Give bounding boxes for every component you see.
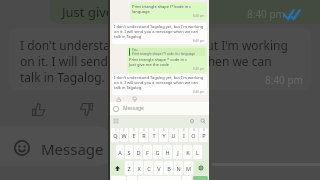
button[interactable]: M	[184, 161, 193, 175]
button[interactable]: F	[143, 145, 152, 159]
button[interactable]: K	[183, 145, 192, 159]
staticText: Print triangle shape (*)code in c langua…	[132, 4, 192, 14]
staticText: 8:40 pm	[193, 67, 205, 71]
staticText: T	[152, 132, 156, 139]
staticText: E	[132, 132, 136, 139]
staticText: Z	[127, 165, 131, 172]
staticText: 6	[163, 128, 165, 132]
staticText: I don't understand Tagalog yet, but I'm …	[114, 24, 204, 39]
button[interactable]: I don't understand Tagalog yet, but I'm …	[114, 24, 205, 43]
button[interactable]: Dislike	[79, 102, 93, 116]
staticText: 5	[153, 128, 155, 132]
staticText: Message	[123, 105, 144, 112]
staticText: You	[132, 48, 138, 52]
button[interactable]: D	[134, 145, 142, 159]
staticText: Message	[41, 139, 104, 159]
button[interactable]: A	[116, 145, 124, 159]
staticText: M	[186, 165, 191, 172]
button[interactable]: Dislike	[131, 96, 138, 102]
button[interactable]: You	[129, 48, 205, 71]
button[interactable]: 8	[179, 128, 188, 142]
staticText: I	[183, 132, 185, 139]
staticText: I don't understand Tagalog yet, but I'm …	[114, 75, 204, 90]
button[interactable]: Like	[31, 102, 45, 116]
staticText: Print triangle shape * code in c Just gi…	[129, 57, 187, 67]
button[interactable]: Stickers	[113, 118, 119, 124]
staticText: P	[202, 132, 206, 139]
button[interactable]: Search	[200, 118, 206, 124]
staticText: 2	[123, 128, 125, 132]
button[interactable]: 2	[120, 128, 128, 142]
staticText: S	[127, 149, 131, 156]
staticText: G	[155, 149, 160, 156]
button[interactable]: B	[164, 161, 173, 175]
button[interactable]: I don't understand Tagalog yet, but I'm …	[114, 75, 205, 94]
button[interactable]: N	[174, 161, 183, 175]
staticText: R	[142, 132, 146, 139]
button[interactable]: 4	[139, 128, 148, 142]
staticText: A	[118, 149, 122, 156]
button[interactable]: Period	[182, 176, 192, 180]
staticText: Q	[113, 132, 118, 139]
button[interactable]: Comma	[127, 176, 137, 180]
button[interactable]	[0, 126, 116, 166]
staticText: C	[147, 165, 151, 172]
staticText: 8	[183, 128, 185, 132]
button[interactable]: 9	[189, 128, 198, 142]
staticText: talk in Tagalog.	[20, 69, 105, 85]
button[interactable]: J	[173, 145, 182, 159]
staticText: I don't understand Tagalog yet, but I'm …	[20, 37, 288, 53]
staticText: 8:40 pm	[193, 90, 205, 94]
staticText: 1	[115, 128, 117, 132]
other: Read receipt	[284, 9, 300, 20]
button[interactable]: G	[153, 145, 162, 159]
button[interactable]: 6	[159, 128, 168, 142]
button[interactable]: H	[163, 145, 172, 159]
staticText: J	[177, 149, 179, 156]
staticText: D	[136, 149, 141, 156]
button[interactable]: Settings	[189, 118, 195, 124]
button[interactable]: L	[193, 145, 202, 159]
staticText: H	[165, 149, 170, 156]
staticText: 8:40 pm	[193, 39, 205, 43]
staticText: on it. I will send you a message when we…	[20, 53, 272, 69]
staticText: 7	[173, 128, 175, 132]
staticText: 8:40 pm	[265, 73, 303, 87]
staticText: 8:40 pm	[247, 7, 285, 21]
button[interactable]: S	[125, 145, 133, 159]
button[interactable]: 1	[111, 128, 119, 142]
staticText: W	[121, 132, 127, 139]
button[interactable]: Backspace	[194, 161, 208, 175]
button[interactable]: 5	[149, 128, 158, 142]
button[interactable]: 3	[129, 128, 138, 142]
staticText: O	[191, 132, 196, 139]
staticText: X	[137, 165, 141, 172]
button[interactable]: Emoji	[14, 140, 30, 156]
staticText: B	[167, 165, 171, 172]
staticText: V	[157, 165, 161, 172]
button[interactable]: C	[144, 161, 153, 175]
button[interactable]: Print triangle shape (*)code in c langua…	[132, 4, 205, 18]
staticText: 4	[143, 128, 145, 132]
button[interactable]: Like	[115, 96, 122, 102]
staticText: N	[176, 165, 181, 172]
staticText: 3	[133, 128, 135, 132]
staticText: L	[196, 149, 199, 156]
staticText: Y	[162, 132, 166, 139]
staticText: K	[186, 149, 190, 156]
button[interactable]: X	[134, 161, 143, 175]
staticText: U	[171, 132, 176, 139]
button[interactable]: V	[154, 161, 163, 175]
staticText: Print triangle shape (*) code in c langu…	[132, 52, 195, 56]
staticText: 0	[203, 128, 205, 132]
button[interactable]: Shift	[111, 161, 124, 175]
staticText: F	[146, 149, 149, 156]
button[interactable]: Emoji	[113, 106, 119, 112]
button[interactable]: Z	[125, 161, 133, 175]
staticText: 8:40 pm	[193, 14, 205, 18]
button[interactable]: Enter	[193, 176, 208, 180]
button[interactable]: 0	[199, 128, 208, 142]
button[interactable]: 7	[169, 128, 178, 142]
